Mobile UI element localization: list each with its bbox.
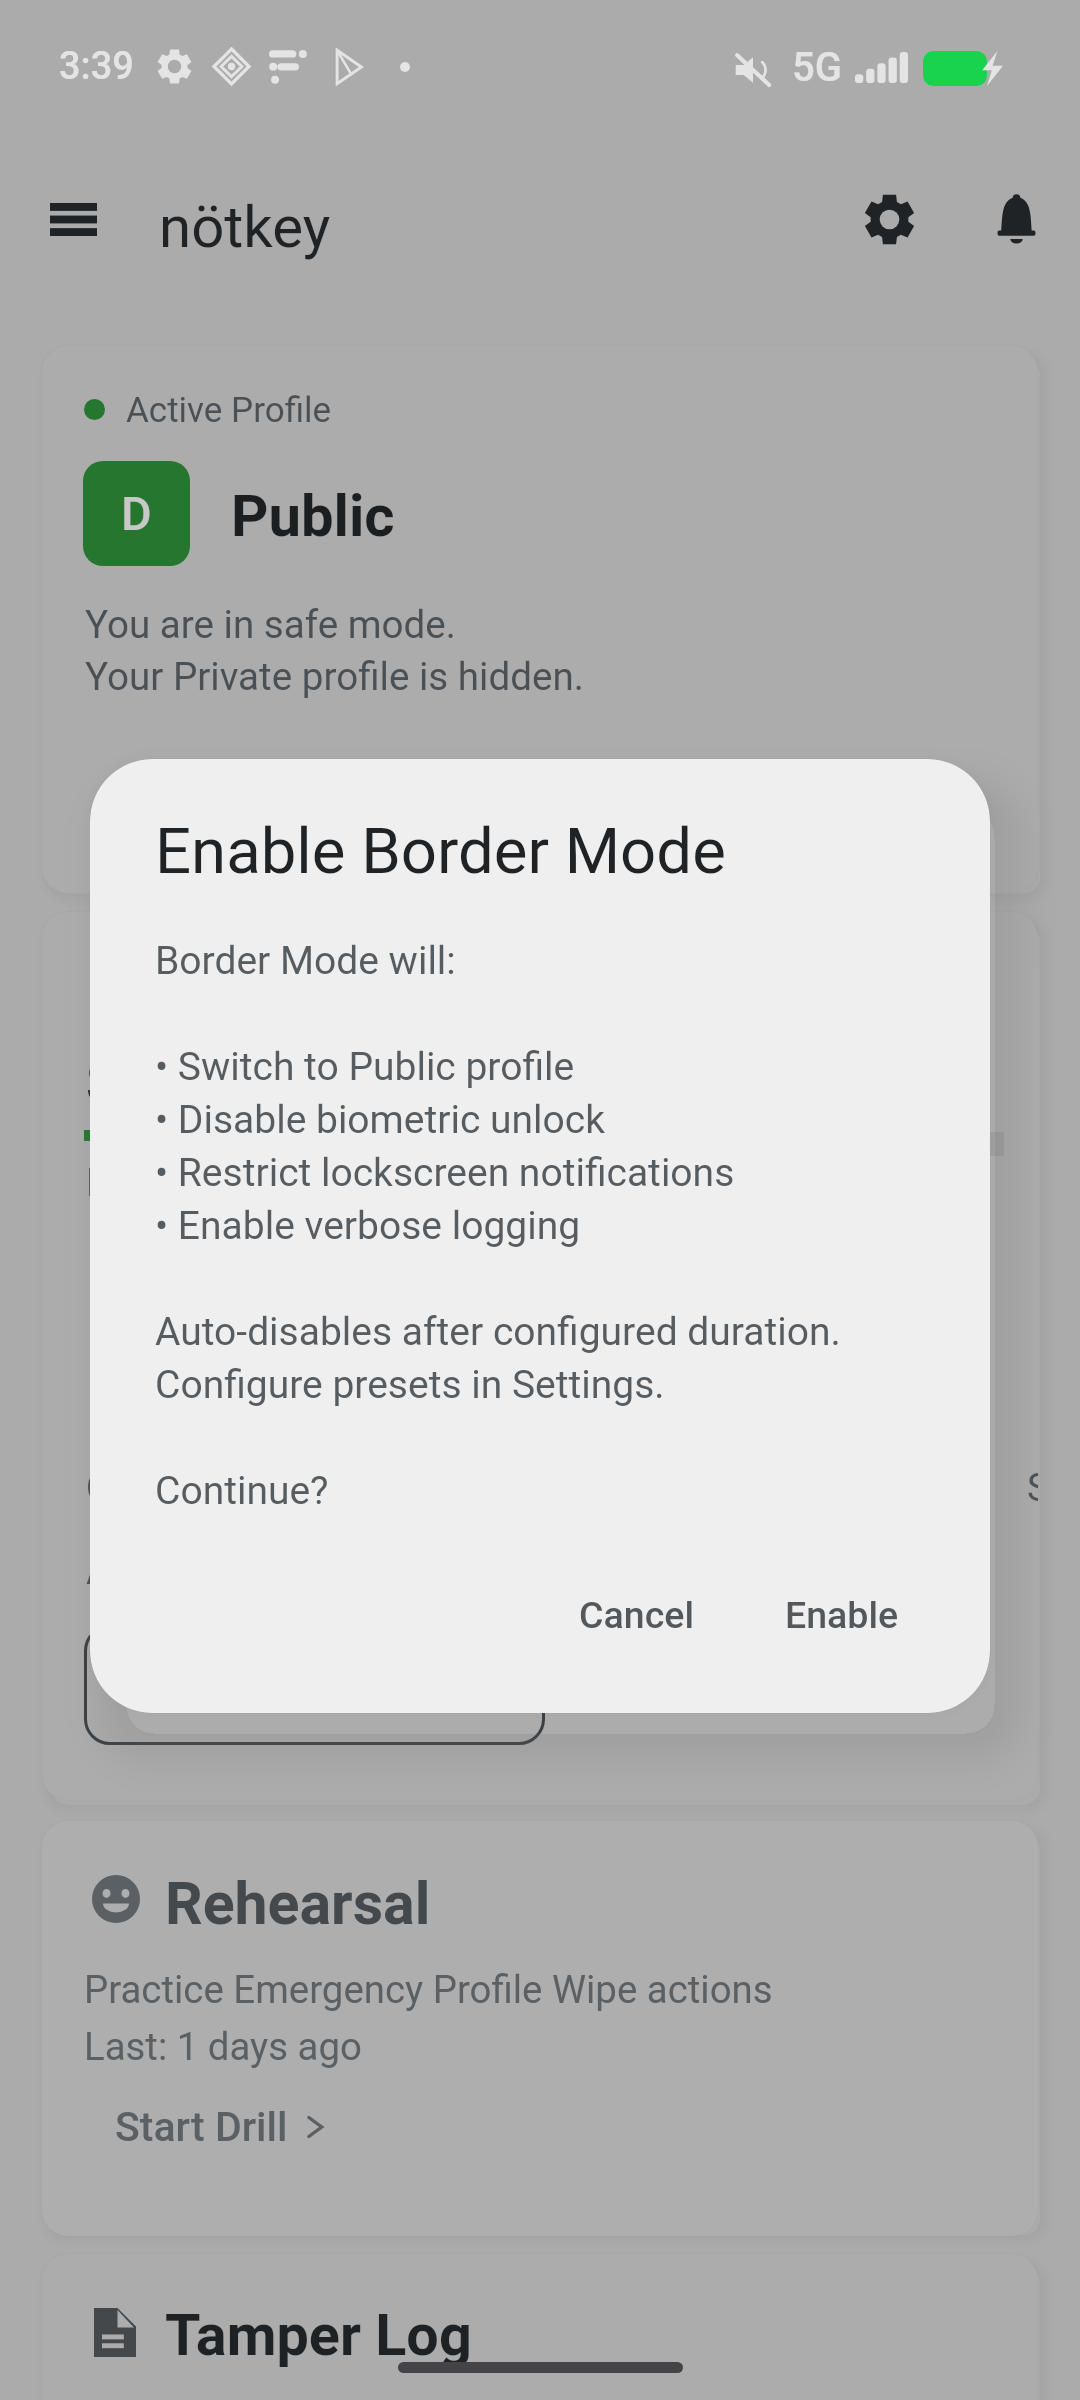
button[interactable]: Active Profile	[42, 346, 1038, 893]
staticText: Public	[231, 482, 395, 550]
staticText: Enable Border Mode	[155, 814, 726, 888]
staticText: Rehearsal	[165, 1869, 431, 1938]
button[interactable]: Enable	[755, 1571, 929, 1659]
staticText: D	[121, 486, 152, 541]
staticText: Set	[1027, 1466, 1038, 1511]
button[interactable]: Cancel	[549, 1571, 725, 1659]
staticText: Tamper Log	[165, 2302, 472, 2369]
staticText: Last check 2m ago	[86, 1161, 406, 1206]
staticText: Practice Emergency Profile Wipe actions	[84, 1967, 773, 2012]
staticText: You are in safe mode. Your Private profi…	[85, 602, 584, 700]
staticText: Cancel	[579, 1593, 695, 1637]
button[interactable]: Settings	[833, 163, 945, 275]
button[interactable]: Start Drill	[107, 2097, 337, 2157]
staticText: 3:39	[59, 44, 134, 89]
staticText: Shield	[86, 1050, 247, 1117]
button[interactable]: Open navigation menu	[25, 171, 121, 267]
button[interactable]: Notifications	[960, 163, 1072, 275]
staticText: Arm	[86, 1549, 157, 1594]
button[interactable]: Tamper Log	[42, 2254, 1038, 2400]
staticText: nötkey	[159, 193, 331, 261]
staticText: Border Mode will: • Switch to Public pro…	[155, 938, 841, 1513]
staticText: 5G	[792, 44, 842, 91]
staticText: Quick actions	[86, 1466, 316, 1511]
staticText: Start Drill	[115, 2103, 288, 2151]
staticText: Active Profile	[126, 390, 332, 431]
staticText: Last: 1 days ago	[84, 2024, 362, 2069]
staticText: Enable	[785, 1593, 899, 1637]
